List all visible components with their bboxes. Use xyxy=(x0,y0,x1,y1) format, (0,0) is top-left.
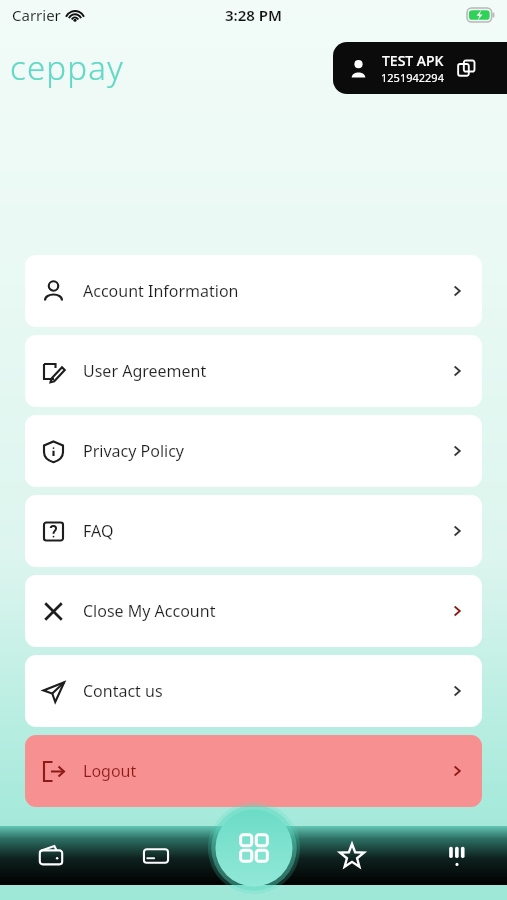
staticText: FAQ xyxy=(83,520,114,542)
staticText: Carrier xyxy=(12,5,61,25)
button[interactable]: Favorites xyxy=(301,826,402,885)
button[interactable]: Logout xyxy=(25,735,482,807)
staticText: User Agreement xyxy=(83,360,207,382)
staticText: ceppay xyxy=(10,45,124,90)
button[interactable]: User Agreement xyxy=(25,335,482,407)
button[interactable]: TEST APK xyxy=(333,42,507,94)
button[interactable]: ceppay xyxy=(10,45,124,90)
staticText: 3:28 PM xyxy=(225,5,282,25)
button[interactable]: FAQ xyxy=(25,495,482,567)
staticText: 1251942294 xyxy=(381,70,444,85)
staticText: Logout xyxy=(83,760,137,782)
button[interactable]: Close My Account xyxy=(25,575,482,647)
button[interactable]: Privacy Policy xyxy=(25,415,482,487)
staticText: Contact us xyxy=(83,680,163,702)
staticText: TEST APK xyxy=(382,51,444,70)
button[interactable]: More xyxy=(406,826,507,885)
staticText: Privacy Policy xyxy=(83,440,184,462)
button[interactable]: Cards xyxy=(105,826,206,885)
staticText: Account Information xyxy=(83,280,239,302)
button[interactable]: Account Information xyxy=(25,255,482,327)
button[interactable]: Contact us xyxy=(25,655,482,727)
button[interactable]: Wallet xyxy=(0,826,101,885)
staticText: Close My Account xyxy=(83,600,216,622)
button[interactable]: Apps xyxy=(207,801,301,895)
